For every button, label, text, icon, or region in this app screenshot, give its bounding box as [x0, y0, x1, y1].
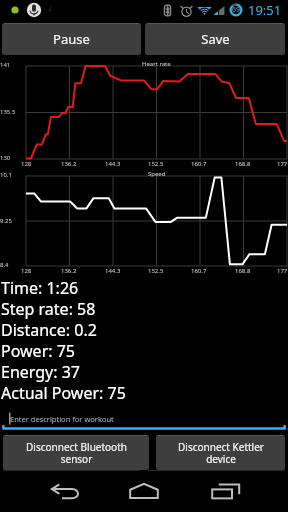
- staticText: 152.5: [148, 160, 164, 168]
- staticText: 69: [232, 5, 241, 15]
- staticText: Distance: 0.2: [1, 319, 97, 340]
- staticText: Heart rate: [142, 60, 171, 68]
- staticText: 141: [0, 61, 11, 69]
- staticText: Pause: [53, 30, 90, 48]
- staticText: Step rate: 58: [1, 298, 96, 319]
- button[interactable]: Pause: [2, 23, 141, 55]
- button[interactable]: Disconnect Kettler device: [156, 435, 285, 470]
- button[interactable]: Recent apps: [194, 470, 258, 512]
- staticText: Time: 1:26: [1, 277, 79, 298]
- staticText: 10.1: [0, 171, 12, 179]
- staticText: 144.3: [105, 160, 121, 168]
- staticText: 135.5: [0, 108, 16, 116]
- staticText: 177: [277, 160, 288, 168]
- button[interactable]: Enter description for workout: [0, 405, 288, 431]
- button[interactable]: Home: [112, 470, 176, 512]
- staticText: 128: [21, 160, 32, 168]
- button[interactable]: Disconnect Bluetooth sensor: [3, 435, 149, 470]
- staticText: 128: [21, 267, 32, 275]
- staticText: 136.2: [61, 267, 77, 275]
- staticText: Disconnect Kettler device: [178, 440, 264, 466]
- staticText: Save: [201, 30, 230, 48]
- staticText: Power: 75: [1, 340, 76, 361]
- staticText: Energy: 37: [1, 361, 81, 382]
- staticText: 144.3: [105, 267, 121, 275]
- staticText: Disconnect Bluetooth sensor: [26, 440, 127, 466]
- staticText: 160.7: [191, 160, 207, 168]
- staticText: 168.8: [235, 267, 251, 275]
- staticText: 136.2: [61, 160, 77, 168]
- staticText: 19:51: [248, 1, 282, 19]
- staticText: 8.4: [0, 261, 9, 269]
- staticText: Speed: [148, 170, 166, 178]
- staticText: 152.5: [148, 267, 164, 275]
- staticText: Actual Power: 75: [1, 382, 126, 403]
- staticText: 130: [0, 154, 11, 162]
- staticText: 160.7: [191, 267, 207, 275]
- staticText: 168.8: [235, 160, 251, 168]
- staticText: Enter description for workout: [10, 414, 114, 424]
- staticText: 177: [277, 267, 288, 275]
- button[interactable]: Save: [145, 23, 285, 55]
- button[interactable]: Back: [33, 470, 97, 512]
- staticText: 9.25: [0, 217, 12, 225]
